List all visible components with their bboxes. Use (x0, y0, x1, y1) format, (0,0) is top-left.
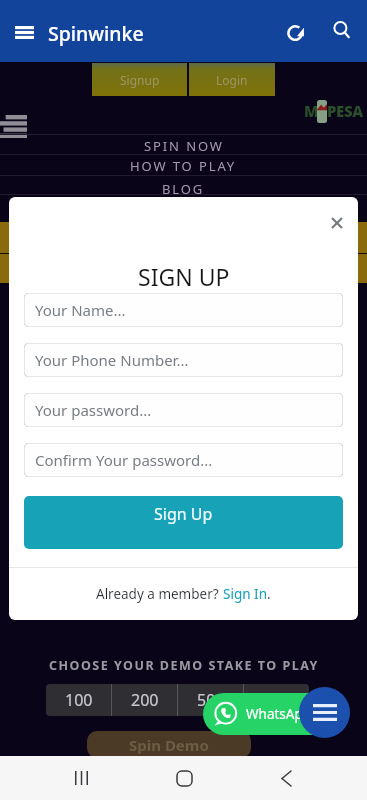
button[interactable]: 200 (112, 684, 177, 716)
staticText: 500 (197, 689, 225, 711)
staticText: Your Name... (35, 300, 126, 320)
button[interactable]: Spin Demo (87, 731, 251, 758)
button[interactable]: Recents (59, 756, 103, 800)
staticText: Your Phone Number... (35, 350, 189, 370)
button[interactable]: Back (264, 756, 308, 800)
staticText: Login (216, 72, 248, 88)
button[interactable]: HOW TO PLAY (0, 156, 367, 176)
button[interactable]: Signup (92, 63, 187, 96)
button[interactable]: Search (324, 12, 360, 48)
staticText: Sign In (223, 585, 267, 603)
button[interactable]: WhatsApp (203, 693, 337, 735)
button[interactable]: BLOG (0, 179, 367, 199)
button[interactable]: Close (324, 210, 350, 236)
staticText: HOW TO PLAY (130, 157, 237, 175)
staticText: SIGN UP (138, 261, 230, 292)
button[interactable]: 1000 (244, 684, 309, 716)
button[interactable]: Confirm Your password... (24, 443, 343, 477)
staticText: Spin Demo (129, 735, 209, 755)
staticText: 1000 (258, 689, 295, 711)
button[interactable]: 500 (178, 684, 243, 716)
staticText: Confirm Your password... (35, 450, 213, 470)
staticText: . (267, 585, 271, 603)
button[interactable]: Sign Up (24, 496, 343, 549)
button[interactable]: Your Name... (24, 293, 343, 327)
staticText: PESA (327, 101, 363, 121)
staticText: Sign Up (154, 503, 213, 525)
staticText: Already a member? (96, 585, 223, 603)
staticText: Signup (120, 72, 160, 88)
staticText: BLOG (162, 180, 205, 198)
button[interactable]: Open menu (299, 687, 350, 738)
staticText: Spinwinke (48, 20, 144, 47)
button[interactable]: Home (162, 756, 206, 800)
staticText: 200 (131, 689, 159, 711)
staticText: CHOOSE YOUR DEMO STAKE TO PLAY (49, 657, 319, 674)
button[interactable]: Refresh (278, 14, 314, 50)
button[interactable]: Login (189, 63, 275, 96)
button[interactable]: Menu (5, 22, 43, 42)
button[interactable]: Your password... (24, 393, 343, 427)
staticText: SPIN NOW (144, 137, 224, 155)
staticText: Your password... (35, 400, 152, 420)
button[interactable]: Sign In (223, 585, 267, 603)
staticText: 100 (65, 689, 93, 711)
button[interactable]: Your Phone Number... (24, 343, 343, 377)
button[interactable]: 100 (46, 684, 111, 716)
staticText: M (304, 101, 319, 121)
button[interactable]: SPIN NOW (0, 136, 367, 156)
staticText: WhatsApp (246, 705, 312, 723)
